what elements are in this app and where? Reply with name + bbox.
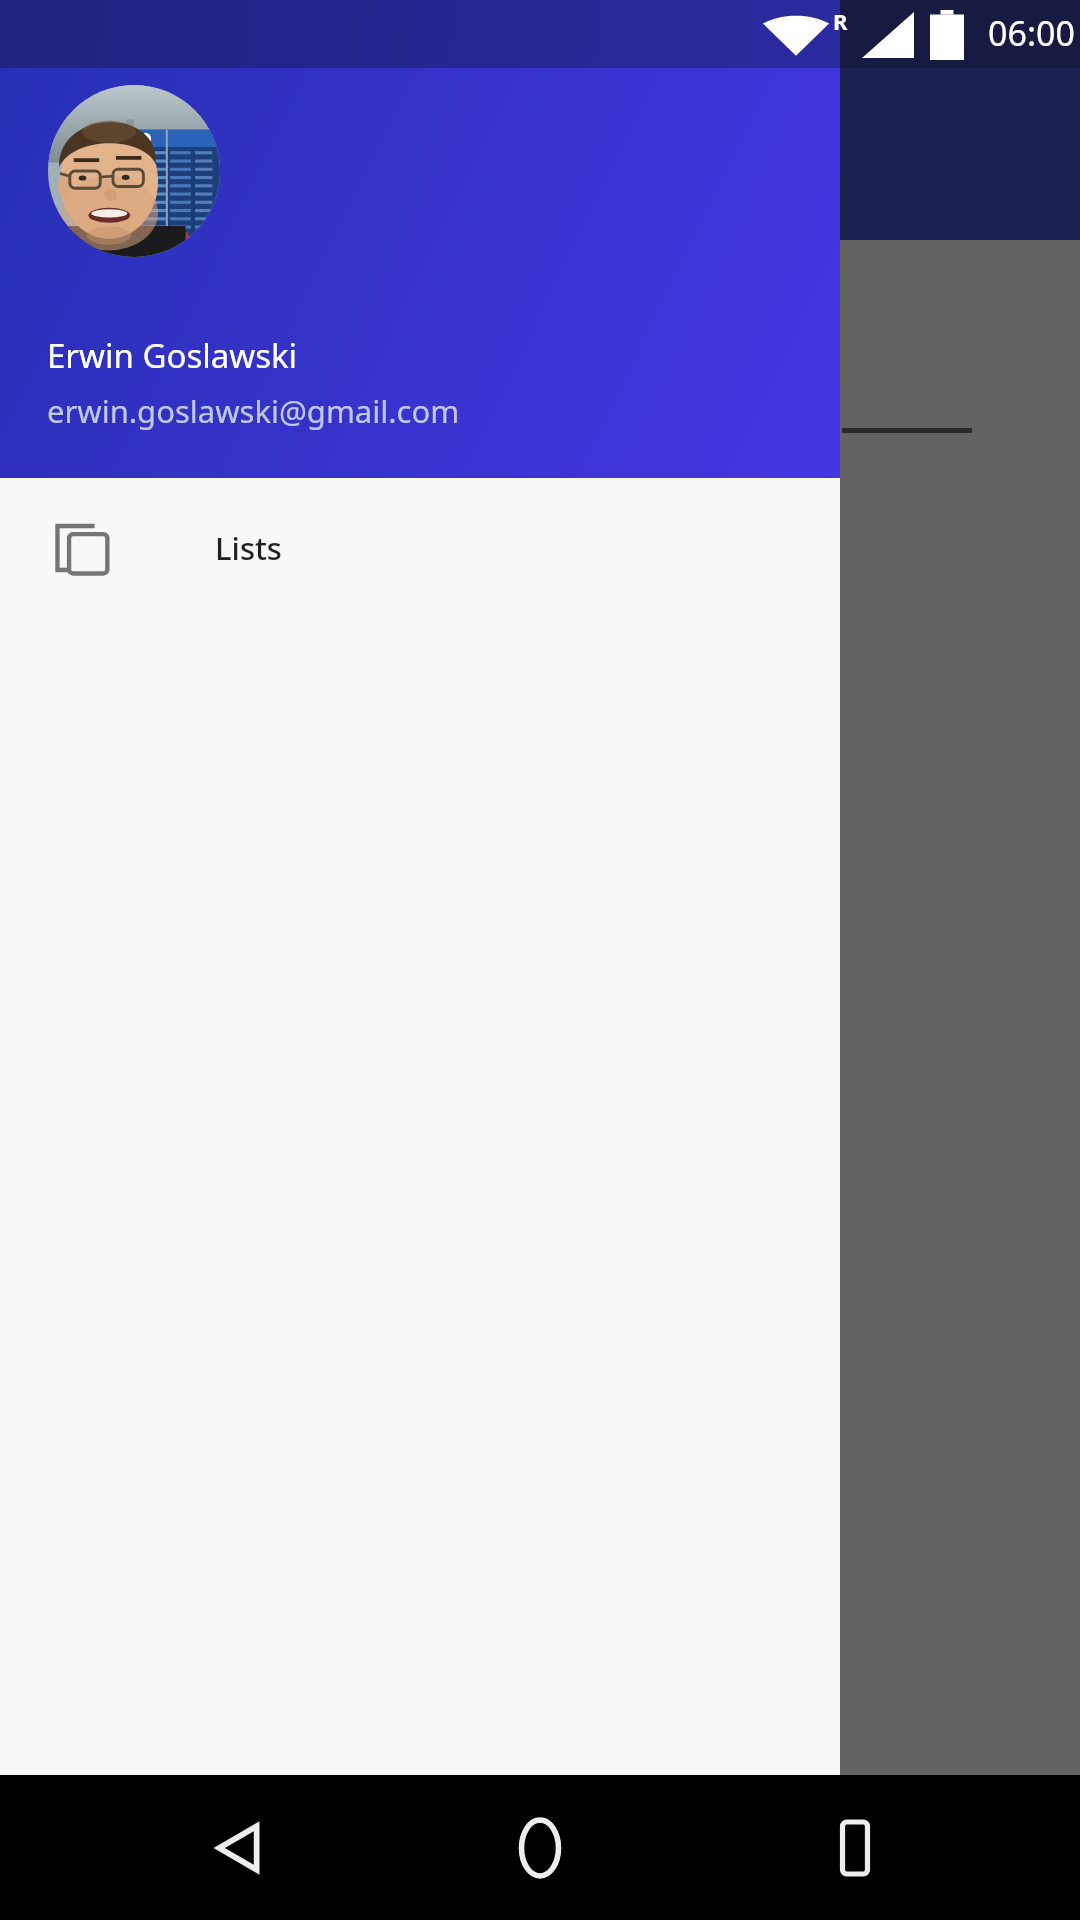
button[interactable]: Back — [195, 1803, 285, 1893]
staticText: Erwin Goslawski — [47, 333, 298, 378]
button[interactable]: Home — [495, 1803, 585, 1893]
staticText: 06:00 — [988, 10, 1075, 56]
button[interactable]: Recent apps — [810, 1803, 900, 1893]
button[interactable]: Profile photo — [0, 68, 840, 478]
staticText: erwin.goslawski@gmail.com — [47, 390, 460, 432]
button[interactable]: Lists — [0, 478, 840, 618]
staticText: R — [833, 6, 848, 36]
other: Profile photo — [48, 85, 220, 257]
staticText: Lists — [215, 527, 282, 569]
